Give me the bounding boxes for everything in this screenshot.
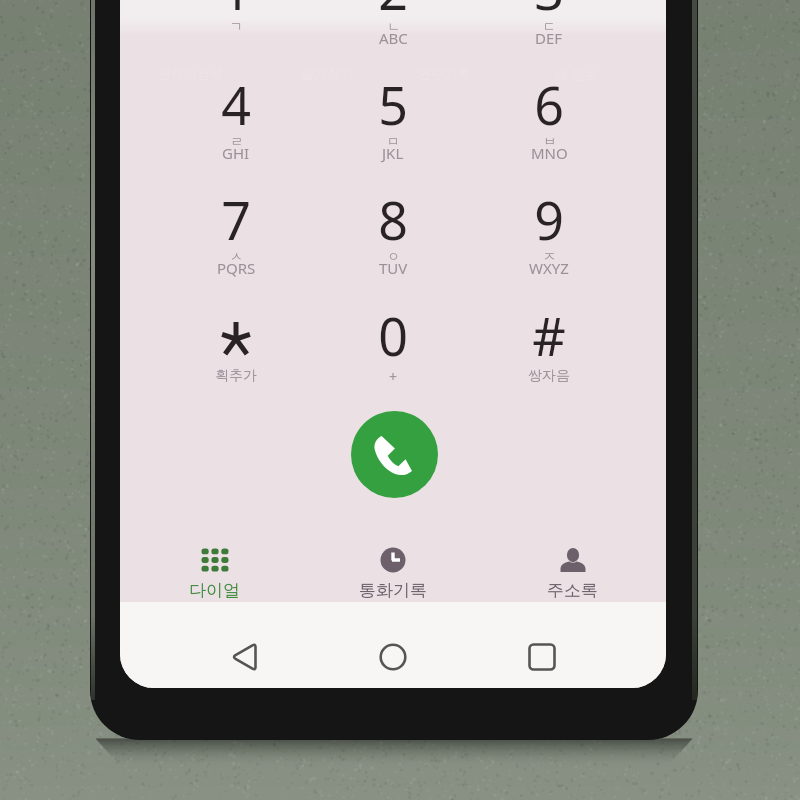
button[interactable]: 0 — [315, 288, 471, 403]
staticText: 획추가 — [215, 367, 257, 385]
staticText: 7 — [221, 184, 251, 255]
button[interactable]: 9 — [471, 172, 627, 287]
button[interactable]: # — [471, 288, 627, 403]
button[interactable]: 8 — [315, 172, 471, 287]
staticText: 8 — [378, 184, 408, 255]
button[interactable]: 통화기록 — [323, 547, 463, 605]
staticText: TUV — [379, 258, 408, 278]
staticText: ㅂ — [543, 133, 556, 149]
staticText: ㄱ — [230, 18, 243, 34]
staticText: 6 — [534, 69, 564, 140]
staticText: ㅁ — [387, 133, 400, 149]
staticText: MNO — [531, 143, 568, 163]
staticText: 2 — [378, 0, 408, 25]
button[interactable]: Recents — [508, 623, 576, 688]
staticText: 4 — [221, 69, 251, 140]
staticText: ㅇ — [387, 248, 400, 264]
staticText: 5 — [378, 69, 408, 140]
staticText: PQRS — [217, 258, 256, 278]
button[interactable]: Home — [359, 623, 427, 688]
button[interactable]: Call — [351, 411, 438, 498]
staticText: ㄹ — [230, 133, 243, 149]
button[interactable]: 2 — [315, 0, 471, 57]
staticText: + — [389, 367, 398, 386]
button[interactable]: 획추가 — [158, 288, 314, 403]
staticText: ㅅ — [230, 248, 243, 264]
staticText: 3 — [534, 0, 564, 25]
staticText: GHI — [222, 143, 250, 163]
button[interactable]: 6 — [471, 57, 627, 172]
staticText: ㅈ — [543, 248, 556, 264]
button[interactable]: Back — [210, 623, 278, 688]
staticText: # — [532, 300, 566, 371]
staticText: ABC — [379, 28, 408, 48]
staticText: 1 — [221, 0, 251, 25]
button[interactable]: 3 — [471, 0, 627, 57]
staticText: 주소록 — [547, 580, 598, 601]
staticText: ㄷ — [543, 18, 556, 34]
button[interactable]: 1 — [158, 0, 314, 57]
staticText: 0 — [378, 300, 408, 371]
button[interactable]: 5 — [315, 57, 471, 172]
button[interactable]: 다이얼 — [144, 547, 284, 605]
staticText: 쌍자음 — [528, 367, 570, 385]
staticText: 통화기록 — [359, 580, 427, 601]
staticText: WXYZ — [529, 258, 569, 278]
button[interactable]: 7 — [158, 172, 314, 287]
staticText: DEF — [535, 28, 563, 48]
button[interactable]: 4 — [158, 57, 314, 172]
staticText: 다이얼 — [189, 580, 240, 601]
staticText: JKL — [382, 143, 404, 163]
staticText: ㄴ — [387, 18, 400, 34]
button[interactable]: 주소록 — [502, 547, 642, 605]
staticText: 9 — [534, 184, 564, 255]
